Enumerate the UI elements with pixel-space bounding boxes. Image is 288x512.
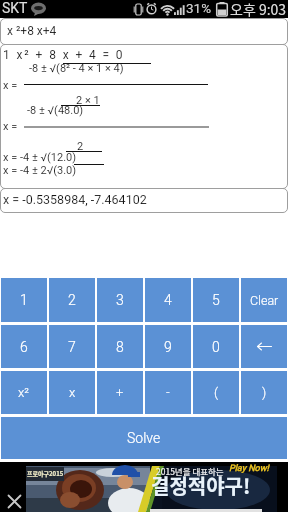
button[interactable] [241, 325, 287, 368]
staticText: SKT [2, 0, 28, 16]
staticText: Clear [250, 293, 279, 308]
staticText: x = -0.5358984, -7.464102 [3, 192, 147, 207]
staticText: x² [18, 385, 30, 400]
staticText: Play Now! [229, 463, 269, 474]
button[interactable]: 프로야구2015 [0, 462, 288, 512]
button[interactable]: 5 [193, 278, 239, 322]
button[interactable]: 9 [145, 325, 191, 368]
button[interactable]: ( [193, 371, 239, 414]
staticText: 1 [20, 292, 28, 308]
staticText: 오후 9:03 [230, 0, 287, 17]
staticText: Solve [127, 430, 161, 446]
button[interactable]: 2 [49, 278, 95, 322]
staticText: x = -4 ± 2√(3.0) [3, 164, 77, 177]
button[interactable]: 4 [145, 278, 191, 322]
button[interactable]: + [97, 371, 143, 414]
staticText: 1 x² + 8 x + 4 = 0 [3, 48, 125, 62]
staticText: 8 [116, 339, 124, 355]
staticText: 5 [212, 292, 220, 308]
staticText: + [116, 385, 124, 400]
staticText: x = -4 ± √(12.0) [3, 151, 77, 164]
button[interactable]: 0 [193, 325, 239, 368]
staticText: x [69, 385, 76, 400]
staticText: - [166, 385, 170, 400]
button[interactable]: ) [241, 371, 287, 414]
staticText: -8 ± √(8² - 4 × 1 × 4) [29, 62, 124, 75]
staticText: 31% [186, 0, 212, 16]
staticText: 0 [212, 339, 220, 355]
staticText: 프로야구2015 [27, 469, 64, 478]
staticText: ( [214, 385, 219, 400]
button[interactable]: 7 [49, 325, 95, 368]
button[interactable] [5, 492, 24, 511]
staticText: 3 [116, 292, 124, 308]
staticText: x = [3, 79, 18, 92]
staticText: 2015년을 대표하는 [156, 465, 224, 477]
staticText: 2 [77, 140, 84, 153]
button[interactable]: 6 [1, 325, 47, 368]
staticText: ) [262, 385, 267, 400]
button[interactable]: x² [1, 371, 47, 414]
staticText: 7 [68, 339, 76, 355]
button[interactable]: 3 [97, 278, 143, 322]
staticText: 6 [20, 339, 28, 355]
button[interactable]: Clear [241, 278, 287, 322]
staticText: 9 [164, 339, 172, 355]
staticText: x = [3, 120, 18, 133]
staticText: 4 [164, 292, 172, 308]
staticText: x ²+8 x+4 [7, 24, 57, 38]
button[interactable]: 1 [1, 278, 47, 322]
staticText: 결정적야구! [151, 471, 251, 500]
button[interactable]: x [49, 371, 95, 414]
staticText: -8 ± √(48.0) [27, 104, 84, 117]
button[interactable]: - [145, 371, 191, 414]
staticText: 2 [68, 292, 76, 308]
button[interactable]: x ²+8 x+4 [0, 18, 288, 45]
staticText: 2 × 1 [76, 94, 100, 107]
button[interactable]: Solve [1, 417, 287, 459]
button[interactable]: 8 [97, 325, 143, 368]
